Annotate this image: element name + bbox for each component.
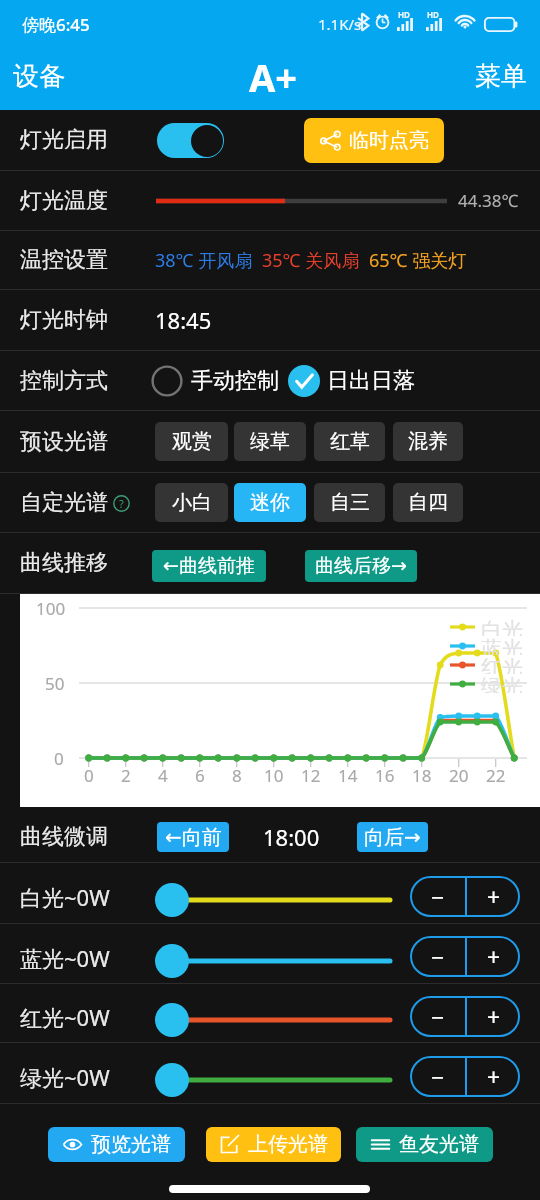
staticText: 日出日落 xyxy=(327,367,415,395)
staticText: 18:45 xyxy=(155,305,212,335)
button[interactable]: 增加 白光~0W xyxy=(467,876,520,917)
staticText: + xyxy=(487,1061,501,1092)
staticText: 22 xyxy=(486,764,506,787)
staticText: 手动控制 xyxy=(191,367,279,395)
button[interactable]: 增加 蓝光~0W xyxy=(467,936,520,977)
button[interactable]: 自四 xyxy=(393,483,463,522)
staticText: − xyxy=(431,941,445,972)
staticText: 自四 xyxy=(408,490,448,515)
staticText: + xyxy=(487,1001,501,1032)
staticText: 设备 xyxy=(13,60,65,93)
button[interactable]: 增加 红光~0W xyxy=(467,996,520,1037)
staticText: 0 xyxy=(54,747,64,770)
button[interactable]: 减少 白光~0W xyxy=(410,876,465,917)
staticText: 曲线微调 xyxy=(20,823,108,851)
staticText: 44.38℃ xyxy=(458,189,519,212)
button[interactable]: 白光~0W xyxy=(155,880,390,920)
staticText: 向后→ xyxy=(364,825,421,850)
staticText: 16 xyxy=(375,764,395,787)
staticText: − xyxy=(431,881,445,912)
staticText: + xyxy=(487,941,501,972)
staticText: − xyxy=(431,1001,445,1032)
staticText: 小白 xyxy=(172,490,212,515)
staticText: 菜单 xyxy=(475,60,527,93)
button[interactable]: 帮助 xyxy=(113,495,130,512)
staticText: 预设光谱 xyxy=(20,428,108,456)
button[interactable]: 减少 绿光~0W xyxy=(410,1056,465,1097)
staticText: ←曲线前推 xyxy=(163,554,255,578)
staticText: 8 xyxy=(232,764,242,787)
staticText: 57 xyxy=(495,19,507,33)
staticText: 白光 xyxy=(481,617,523,636)
staticText: 10 xyxy=(264,764,284,787)
button[interactable]: 灯光启用开关 xyxy=(157,123,224,158)
staticText: HD xyxy=(427,9,439,20)
staticText: − xyxy=(431,1061,445,1092)
button[interactable]: 蓝光~0W xyxy=(155,941,390,981)
button[interactable]: ←曲线前推 xyxy=(152,550,266,582)
staticText: 2 xyxy=(121,764,131,787)
staticText: 65℃ 强关灯 xyxy=(369,248,467,273)
button[interactable]: 上传光谱 xyxy=(206,1127,341,1162)
staticText: 观赏 xyxy=(172,429,212,454)
staticText: 18 xyxy=(412,764,432,787)
staticText: 白光~0W xyxy=(20,882,110,912)
button[interactable]: 曲线后移→ xyxy=(305,550,417,582)
button[interactable]: 减少 蓝光~0W xyxy=(410,936,465,977)
staticText: 曲线后移→ xyxy=(315,554,407,578)
button[interactable]: 向后→ xyxy=(357,822,428,852)
staticText: + xyxy=(487,881,501,912)
staticText: 傍晚6:45 xyxy=(22,13,90,36)
button[interactable]: 鱼友光谱 xyxy=(356,1127,493,1162)
staticText: 35℃ 关风扇 xyxy=(262,248,360,273)
staticText: 50 xyxy=(45,672,65,695)
staticText: 临时点亮 xyxy=(349,128,429,153)
staticText: 上传光谱 xyxy=(248,1132,328,1157)
staticText: 红草 xyxy=(330,429,370,454)
button[interactable]: 预览光谱 xyxy=(48,1127,185,1162)
staticText: 蓝光 xyxy=(481,636,523,655)
button[interactable]: 红光~0W xyxy=(155,1000,390,1040)
button[interactable]: 小白 xyxy=(155,483,228,522)
staticText: 曲线推移 xyxy=(20,549,108,577)
button[interactable]: 临时点亮 xyxy=(304,118,444,163)
staticText: 灯光温度 xyxy=(20,187,108,215)
button[interactable]: 混养 xyxy=(393,422,463,461)
button[interactable]: 减少 红光~0W xyxy=(410,996,465,1037)
staticText: 温控设置 xyxy=(20,246,108,274)
staticText: A+ xyxy=(249,51,298,103)
button[interactable]: 自三 xyxy=(314,483,385,522)
button[interactable]: 手动控制 xyxy=(151,365,279,397)
staticText: 6 xyxy=(195,764,205,787)
staticText: 灯光时钟 xyxy=(20,306,108,334)
staticText: 迷你 xyxy=(250,490,290,515)
button[interactable]: 设备 xyxy=(0,52,78,101)
staticText: 红光~0W xyxy=(20,1002,110,1032)
staticText: 自定光谱 xyxy=(20,489,108,517)
staticText: 0 xyxy=(84,764,94,787)
button[interactable]: 绿光~0W xyxy=(155,1060,390,1100)
staticText: 4 xyxy=(158,764,168,787)
button[interactable]: 增加 绿光~0W xyxy=(467,1056,520,1097)
staticText: HD xyxy=(398,9,410,20)
button[interactable]: 迷你 xyxy=(234,483,306,522)
button[interactable]: 观赏 xyxy=(155,422,228,461)
staticText: 38℃ 开风扇 xyxy=(155,248,253,273)
staticText: 绿草 xyxy=(250,429,290,454)
staticText: 灯光启用 xyxy=(20,126,108,154)
staticText: ←向前 xyxy=(165,825,222,850)
button[interactable]: 红草 xyxy=(314,422,385,461)
button[interactable]: 菜单 xyxy=(462,52,540,101)
staticText: 自三 xyxy=(330,490,370,515)
button[interactable]: ←向前 xyxy=(157,822,229,852)
staticText: 12 xyxy=(301,764,321,787)
staticText: 1.1K/s xyxy=(318,14,362,34)
staticText: 蓝光~0W xyxy=(20,943,110,973)
staticText: 18:00 xyxy=(263,822,320,852)
staticText: 混养 xyxy=(408,429,448,454)
staticText: 预览光谱 xyxy=(91,1132,171,1157)
staticText: 控制方式 xyxy=(20,367,108,395)
staticText: 红光 xyxy=(481,655,523,674)
button[interactable]: 日出日落 xyxy=(288,365,415,397)
button[interactable]: 绿草 xyxy=(234,422,306,461)
